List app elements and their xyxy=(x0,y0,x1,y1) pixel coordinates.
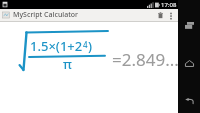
staticText: π xyxy=(63,55,72,73)
staticText: =2.849... xyxy=(112,48,179,71)
staticText: 4 xyxy=(83,39,88,50)
button[interactable]: Recent apps xyxy=(178,14,200,36)
staticText: 17:08 xyxy=(161,1,177,9)
button[interactable]: More options xyxy=(166,9,176,21)
button[interactable]: Home xyxy=(178,52,200,74)
button[interactable]: Back xyxy=(178,90,200,112)
button[interactable]: Clear xyxy=(154,9,166,21)
staticText: 1.5×(1+2 xyxy=(30,37,83,55)
staticText: ) xyxy=(88,37,93,55)
staticText: MyScript Calculator xyxy=(13,10,79,20)
